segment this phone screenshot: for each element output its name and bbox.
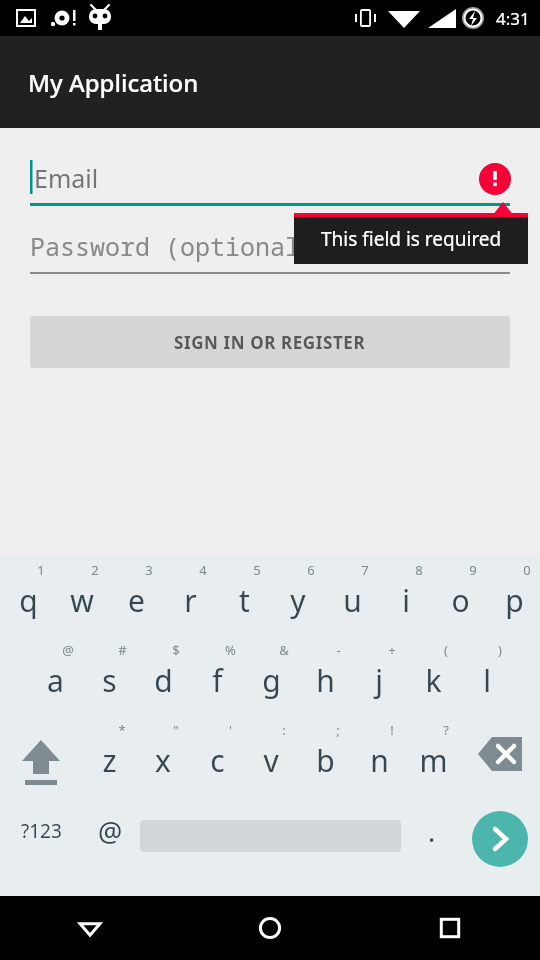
button[interactable]: . (405, 796, 459, 866)
staticText: x (155, 740, 171, 781)
button[interactable]: # (82, 636, 136, 716)
button[interactable]: ' (190, 716, 244, 796)
button[interactable]: ?123 (0, 796, 82, 866)
button[interactable]: % (190, 636, 244, 716)
staticText: . (428, 813, 436, 850)
staticText: n (370, 740, 389, 781)
staticText: " (173, 721, 179, 739)
staticText: 2 (91, 561, 99, 579)
staticText: * (118, 721, 126, 739)
staticText: y (290, 580, 306, 621)
staticText: SIGN IN OR REGISTER (174, 331, 366, 354)
staticText: 4 (199, 561, 207, 579)
button[interactable]: Backspace (460, 716, 540, 796)
staticText: $ (172, 641, 180, 659)
button[interactable]: - (298, 636, 352, 716)
button[interactable]: 7 (325, 556, 379, 636)
staticText: @ (62, 641, 74, 659)
staticText: # (118, 641, 127, 659)
staticText: h (316, 660, 335, 701)
staticText: s (102, 660, 117, 701)
staticText: @ (98, 813, 123, 850)
button[interactable]: Error: this field is required (479, 163, 511, 195)
staticText: q (19, 580, 38, 621)
button[interactable]: " (136, 716, 190, 796)
button[interactable]: * (82, 716, 136, 796)
staticText: 3 (145, 561, 153, 579)
staticText: k (425, 660, 442, 701)
button[interactable]: Password (optional) (30, 228, 510, 274)
staticText: My Application (28, 66, 199, 99)
staticText: ( (444, 641, 448, 659)
staticText: p (505, 580, 524, 621)
button[interactable]: Home (180, 896, 360, 960)
staticText: ! (390, 721, 394, 739)
button[interactable]: Back (0, 896, 180, 960)
button[interactable]: Recents (360, 896, 540, 960)
button[interactable]: Email (30, 160, 510, 206)
staticText: 1 (37, 561, 45, 579)
staticText: 5 (253, 561, 261, 579)
staticText: l (483, 660, 491, 701)
staticText: w (70, 580, 94, 621)
staticText: & (279, 641, 289, 659)
button[interactable]: 1 (1, 556, 55, 636)
button[interactable]: 0 (487, 556, 540, 636)
staticText: ? (443, 721, 449, 739)
button[interactable]: & (244, 636, 298, 716)
staticText: g (262, 660, 281, 701)
button[interactable]: @ (82, 796, 138, 866)
button[interactable]: $ (136, 636, 190, 716)
button[interactable]: Shift (0, 716, 82, 796)
staticText: ?123 (21, 818, 62, 844)
button[interactable]: SIGN IN OR REGISTER (30, 316, 510, 368)
staticText: d (154, 660, 173, 701)
staticText: Email (34, 161, 99, 195)
staticText: + (388, 641, 396, 659)
staticText: i (402, 580, 410, 621)
staticText: e (128, 580, 145, 621)
staticText: Password (optional) (30, 229, 316, 263)
button[interactable]: ) (460, 636, 514, 716)
staticText: 9 (469, 561, 477, 579)
staticText: m (419, 740, 448, 781)
staticText: ) (498, 641, 502, 659)
staticText: u (343, 580, 362, 621)
staticText: ' (229, 721, 232, 739)
staticText: z (102, 740, 117, 781)
staticText: b (316, 740, 335, 781)
staticText: This field is required (321, 226, 502, 252)
staticText: 8 (415, 561, 423, 579)
staticText: 6 (307, 561, 315, 579)
button[interactable]: 9 (433, 556, 487, 636)
staticText: 4:31 (496, 7, 530, 30)
staticText: c (210, 740, 225, 781)
staticText: 0 (523, 561, 531, 579)
staticText: f (212, 660, 223, 701)
button[interactable]: 6 (271, 556, 325, 636)
staticText: a (47, 660, 64, 701)
staticText: t (239, 580, 250, 621)
staticText: j (375, 660, 383, 701)
button[interactable]: 3 (109, 556, 163, 636)
button[interactable]: 2 (55, 556, 109, 636)
button[interactable]: 8 (379, 556, 433, 636)
button[interactable]: + (352, 636, 406, 716)
staticText: - (336, 641, 341, 659)
button[interactable]: ( (406, 636, 460, 716)
button[interactable]: Send (472, 811, 528, 867)
staticText: ; (336, 721, 340, 739)
button[interactable]: @ (28, 636, 82, 716)
staticText: r (184, 580, 197, 621)
staticText: : (282, 721, 286, 739)
staticText: o (451, 580, 470, 621)
button[interactable]: 5 (217, 556, 271, 636)
button[interactable]: : (244, 716, 298, 796)
button[interactable]: ; (298, 716, 352, 796)
button[interactable]: 4 (163, 556, 217, 636)
button[interactable]: ! (352, 716, 406, 796)
staticText: v (263, 740, 279, 781)
staticText: % (225, 641, 236, 659)
button[interactable]: ? (406, 716, 460, 796)
